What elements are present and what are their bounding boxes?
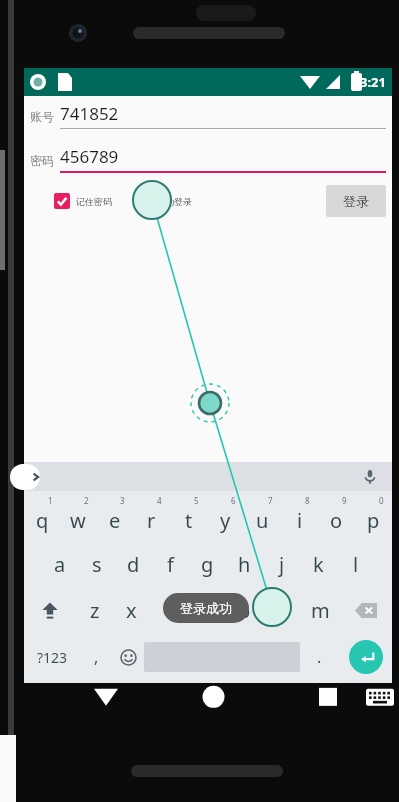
staticText: 5 [194, 495, 199, 506]
staticText: 9 [342, 495, 347, 506]
button[interactable]: 9 [318, 491, 355, 541]
button[interactable]: Expand suggestions [10, 464, 40, 490]
staticText: c [164, 597, 174, 624]
button[interactable]: c [150, 587, 187, 633]
staticText: j [279, 551, 285, 578]
button[interactable]: 7 [244, 491, 281, 541]
staticText: 账号 [30, 109, 54, 124]
button[interactable]: 2 [60, 491, 96, 541]
staticText: 记住密码 [76, 196, 112, 207]
staticText: i [297, 507, 303, 534]
staticText: b [238, 597, 251, 624]
button[interactable]: d [115, 541, 152, 587]
staticText: h [238, 551, 251, 578]
button[interactable]: ?123 [24, 633, 80, 681]
staticText: 登录 [343, 193, 369, 209]
staticText: z [90, 597, 100, 624]
staticText: r [147, 507, 156, 534]
staticText: 7 [268, 495, 273, 506]
button[interactable]: z [76, 587, 113, 633]
button[interactable]: 3 [96, 491, 133, 541]
button[interactable]: l [337, 541, 374, 587]
button[interactable]: . [300, 633, 339, 681]
button[interactable]: b [225, 587, 263, 633]
button[interactable]: 6 [207, 491, 244, 541]
staticText: e [109, 507, 121, 534]
button[interactable]: g [189, 541, 226, 587]
staticText: 3:21 [360, 73, 386, 91]
staticText: x [126, 597, 137, 624]
staticText: n [276, 597, 289, 624]
staticText: u [256, 507, 269, 534]
staticText: s [92, 551, 102, 578]
button[interactable]: 456789 [60, 145, 386, 173]
staticText: q [36, 507, 49, 534]
staticText: w [70, 507, 86, 534]
button[interactable]: f [152, 541, 189, 587]
button[interactable]: 4 [133, 491, 170, 541]
staticText: a [54, 551, 66, 578]
staticText: m [311, 597, 330, 624]
button[interactable]: , [80, 633, 112, 681]
staticText: 自动登录 [156, 196, 192, 207]
staticText: l [353, 551, 359, 578]
staticText: t [185, 507, 193, 534]
button[interactable]: 8 [281, 491, 318, 541]
button[interactable]: m [301, 587, 339, 633]
button[interactable]: 登录 [326, 185, 386, 217]
staticText: g [201, 551, 214, 578]
staticText: 3 [120, 495, 125, 506]
staticText: 1 [48, 495, 53, 506]
staticText: 8 [305, 495, 310, 506]
button[interactable]: x [113, 587, 150, 633]
button[interactable]: 0 [355, 491, 392, 541]
button[interactable]: n [263, 587, 301, 633]
staticText: . [317, 646, 322, 668]
button[interactable]: a [42, 541, 78, 587]
staticText: y [220, 507, 231, 534]
button[interactable]: 741852 [60, 102, 386, 129]
staticText: , [94, 646, 99, 668]
button[interactable]: k [300, 541, 337, 587]
staticText: 4 [157, 495, 162, 506]
button[interactable]: 自动登录 [134, 193, 192, 209]
staticText: v [201, 597, 212, 624]
staticText: 741852 [60, 102, 119, 125]
staticText: ?123 [37, 648, 68, 667]
staticText: 0 [379, 495, 384, 506]
staticText: 456789 [60, 145, 119, 168]
button[interactable]: 5 [170, 491, 207, 541]
button[interactable]: j [263, 541, 300, 587]
button[interactable]: 1 [24, 491, 60, 541]
button[interactable]: h [226, 541, 263, 587]
button[interactable]: 记住密码 [54, 193, 112, 209]
button[interactable]: Emoji [112, 633, 144, 681]
button[interactable]: Enter [349, 640, 383, 674]
staticText: o [330, 507, 343, 534]
staticText: 登录成功 [180, 600, 232, 616]
staticText: k [313, 551, 324, 578]
staticText: 2 [84, 495, 89, 506]
staticText: d [127, 551, 140, 578]
other: Voice input [362, 469, 378, 485]
button[interactable]: s [78, 541, 115, 587]
staticText: 密码 [30, 153, 54, 168]
staticText: p [367, 507, 380, 534]
button[interactable]: Shift [24, 587, 76, 633]
button[interactable]: v [187, 587, 225, 633]
staticText: f [167, 551, 174, 578]
staticText: 6 [231, 495, 236, 506]
button[interactable]: Backspace [339, 587, 392, 633]
